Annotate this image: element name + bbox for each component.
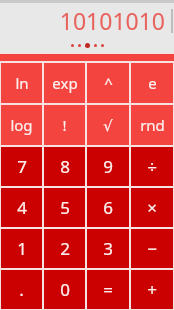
- button[interactable]: 7: [1, 147, 42, 186]
- staticText: −: [147, 237, 157, 260]
- button[interactable]: 4: [1, 188, 42, 227]
- button[interactable]: 2: [44, 229, 85, 268]
- button[interactable]: 8: [44, 147, 85, 186]
- staticText: 6: [103, 196, 113, 219]
- staticText: log: [10, 115, 33, 135]
- button[interactable]: −: [131, 229, 173, 268]
- staticText: 1: [17, 237, 27, 260]
- button[interactable]: 5: [44, 188, 85, 227]
- button[interactable]: ×: [131, 188, 173, 227]
- button[interactable]: e: [131, 63, 173, 103]
- staticText: ÷: [147, 155, 157, 178]
- button[interactable]: ln: [1, 63, 42, 103]
- button[interactable]: 0: [44, 270, 85, 309]
- button[interactable]: 3: [87, 229, 129, 268]
- staticText: ×: [147, 196, 157, 219]
- button[interactable]: 1: [1, 229, 42, 268]
- button[interactable]: log: [1, 105, 42, 145]
- staticText: 0: [60, 278, 70, 301]
- button[interactable]: .: [1, 270, 42, 309]
- staticText: √: [103, 117, 113, 134]
- button[interactable]: exp: [44, 63, 85, 103]
- staticText: e: [148, 73, 157, 93]
- button[interactable]: !: [44, 105, 85, 145]
- button[interactable]: 9: [87, 147, 129, 186]
- staticText: !: [62, 115, 67, 135]
- staticText: 4: [17, 196, 27, 219]
- staticText: ln: [15, 73, 29, 93]
- button[interactable]: =: [87, 270, 129, 309]
- staticText: exp: [52, 73, 78, 93]
- staticText: ^: [104, 73, 113, 93]
- button[interactable]: +: [131, 270, 173, 309]
- staticText: 5: [60, 196, 70, 219]
- button[interactable]: rnd: [131, 105, 173, 145]
- staticText: 10101010: [59, 5, 165, 36]
- staticText: 3: [103, 237, 113, 260]
- staticText: .: [19, 278, 24, 301]
- staticText: 7: [17, 155, 27, 178]
- button[interactable]: ^: [87, 63, 129, 103]
- staticText: 2: [60, 237, 70, 260]
- staticText: rnd: [140, 115, 165, 135]
- staticText: =: [103, 278, 113, 301]
- staticText: +: [147, 278, 157, 301]
- button[interactable]: √: [87, 105, 129, 145]
- button[interactable]: ÷: [131, 147, 173, 186]
- staticText: 8: [60, 155, 70, 178]
- staticText: 9: [103, 155, 113, 178]
- button[interactable]: 6: [87, 188, 129, 227]
